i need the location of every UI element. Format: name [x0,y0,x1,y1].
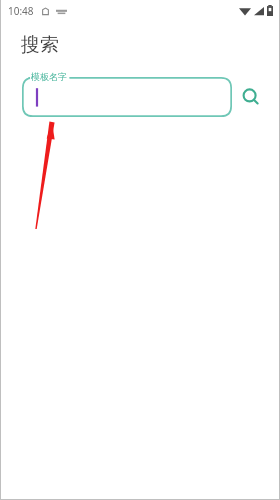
staticText: 10:48 [8,4,34,18]
button[interactable]: Search [236,82,266,112]
staticText: 搜索 [21,33,59,57]
button[interactable]: 模板名字 [22,77,232,117]
staticText: 模板名字 [31,71,67,82]
